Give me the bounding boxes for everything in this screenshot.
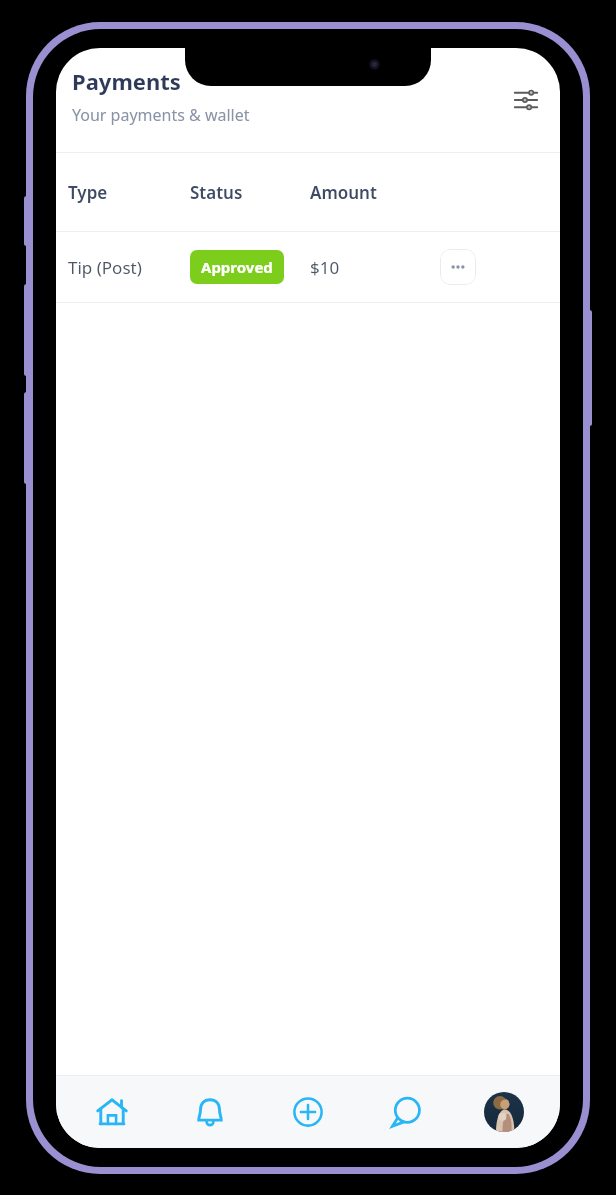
button[interactable]: Profile xyxy=(462,1080,546,1144)
staticText: Approved xyxy=(201,257,273,277)
button[interactable]: Approved xyxy=(190,250,284,284)
button[interactable]: Tip (Post) xyxy=(56,232,560,302)
staticText: Status xyxy=(190,181,243,204)
staticText: Type xyxy=(68,181,108,204)
staticText: Your payments & wallet xyxy=(72,104,250,126)
staticText: Amount xyxy=(310,181,377,204)
other: Volume down xyxy=(24,392,29,484)
button[interactable]: Home xyxy=(70,1080,154,1144)
other: Volume up xyxy=(24,284,29,376)
button[interactable]: Notifications xyxy=(168,1080,252,1144)
other: Silent switch xyxy=(24,196,29,246)
button[interactable]: More options xyxy=(440,249,476,285)
button[interactable]: Create xyxy=(266,1080,350,1144)
button[interactable]: Filter settings xyxy=(504,78,548,122)
other: Power xyxy=(587,310,592,426)
staticText: $10 xyxy=(310,256,340,279)
button[interactable]: Messages xyxy=(364,1080,448,1144)
staticText: Tip (Post) xyxy=(68,256,142,279)
staticText: Payments xyxy=(72,66,181,96)
